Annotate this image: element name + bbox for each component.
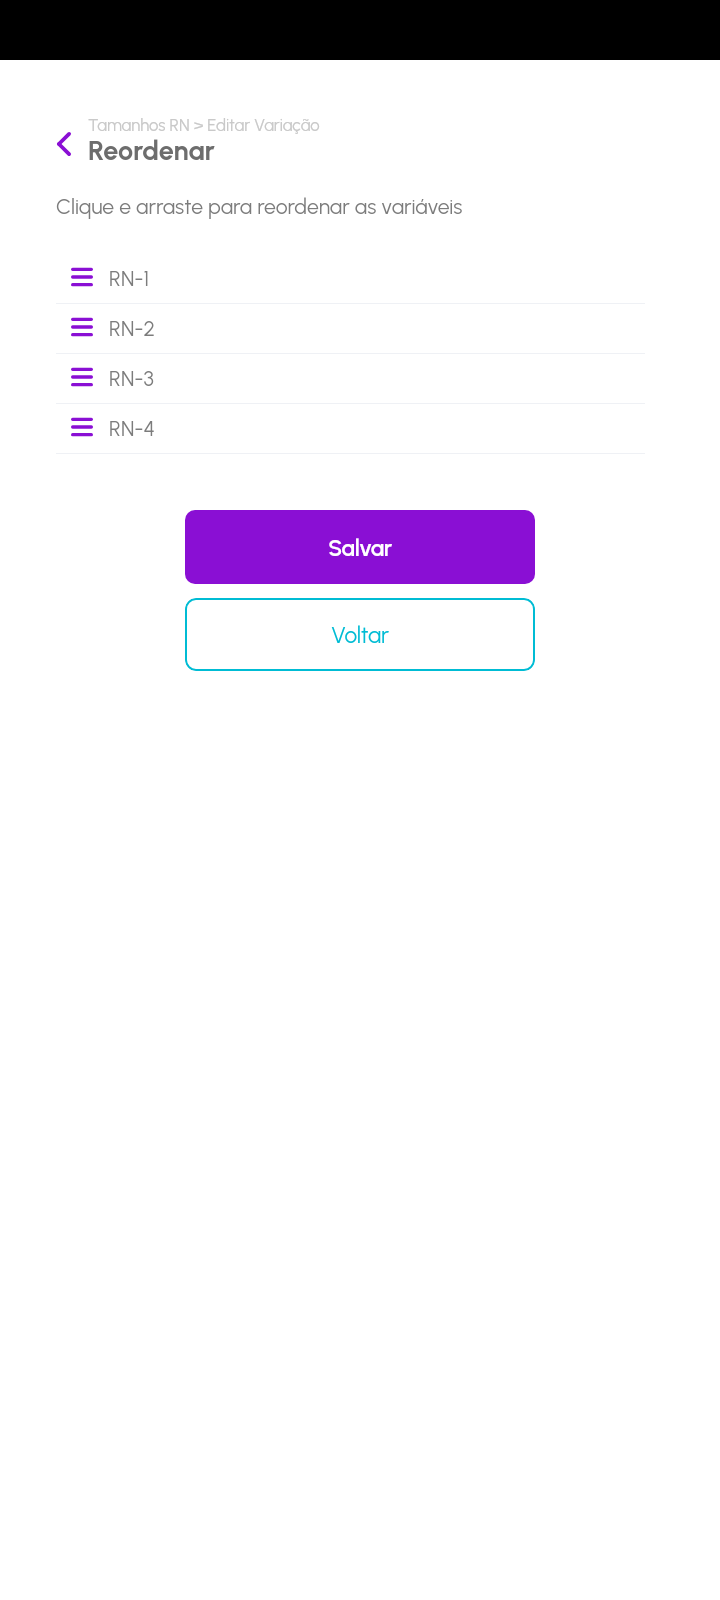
button[interactable]: Voltar — [185, 598, 535, 671]
button[interactable]: Back — [49, 122, 79, 166]
staticText: Voltar — [331, 622, 389, 649]
button[interactable]: RN-4 — [56, 404, 645, 453]
button[interactable]: Salvar — [185, 510, 535, 584]
staticText: RN-1 — [109, 266, 150, 291]
button[interactable]: RN-1 — [56, 254, 645, 303]
staticText: RN-3 — [109, 366, 154, 391]
staticText: Clique e arraste para reordenar as variá… — [56, 194, 463, 219]
staticText: Tamanhos RN > Editar Variação — [88, 115, 320, 135]
button[interactable]: RN-3 — [56, 354, 645, 403]
staticText: Reordenar — [88, 134, 215, 166]
staticText: RN-2 — [109, 316, 156, 341]
staticText: RN-4 — [109, 416, 156, 441]
staticText: Salvar — [328, 535, 392, 562]
button[interactable]: RN-2 — [56, 304, 645, 353]
